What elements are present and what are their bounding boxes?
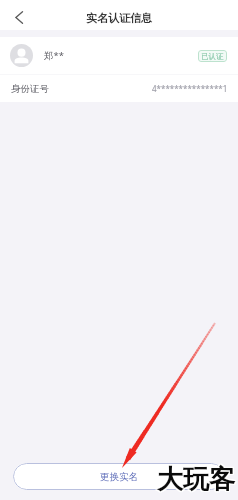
staticText: 大玩客	[158, 464, 236, 497]
staticText: 实名认证信息	[86, 11, 152, 25]
staticText: 大玩客	[158, 463, 236, 496]
button[interactable]: 身份证号	[0, 75, 238, 102]
button[interactable]: 更换实名	[13, 463, 225, 490]
staticText: 大玩客	[156, 464, 234, 497]
staticText: 大玩客	[157, 463, 235, 496]
staticText: 郑**	[44, 49, 64, 62]
staticText: 4***************1	[152, 83, 228, 94]
button[interactable]: 郑**	[0, 37, 238, 74]
staticText: 更换实名	[100, 471, 138, 483]
staticText: 大玩客	[157, 462, 235, 495]
staticText: 身份证号	[11, 83, 49, 95]
button[interactable]: Back	[8, 6, 30, 28]
staticText: 大玩客	[156, 462, 234, 495]
staticText: 大玩客	[158, 462, 236, 495]
staticText: 大玩客	[156, 463, 234, 496]
button[interactable]: 已认证	[198, 50, 227, 62]
staticText: 已认证	[201, 52, 224, 61]
staticText: 大玩客	[157, 464, 235, 497]
